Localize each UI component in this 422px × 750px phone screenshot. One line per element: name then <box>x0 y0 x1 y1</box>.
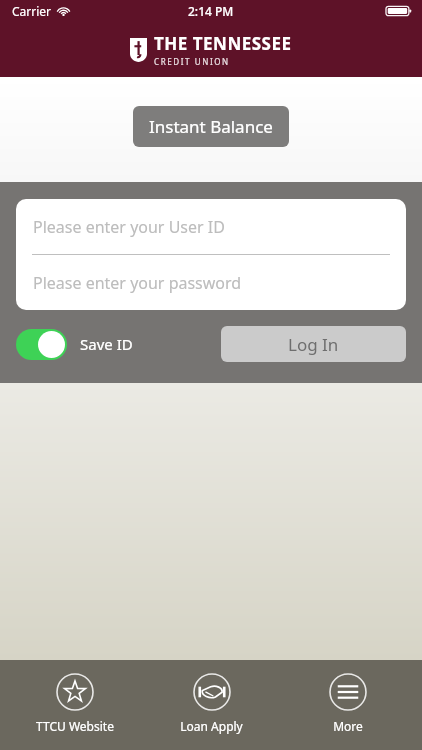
staticText: Please enter your User ID <box>33 216 225 238</box>
staticText: Please enter your password <box>33 272 242 294</box>
button[interactable]: Please enter your User ID <box>16 199 406 254</box>
staticText: More <box>333 718 363 734</box>
staticText: TTCU Website <box>36 718 114 734</box>
staticText: Log In <box>288 333 339 356</box>
button[interactable]: Loan Apply <box>149 660 274 734</box>
staticText: Instant Balance <box>149 115 273 138</box>
staticText: Carrier <box>12 3 52 19</box>
button[interactable]: More <box>285 660 410 734</box>
staticText: THE TENNESSEE <box>154 32 292 55</box>
button[interactable]: Instant Balance <box>133 106 289 147</box>
staticText: 2:14 PM <box>188 3 234 19</box>
staticText: Loan Apply <box>180 718 243 734</box>
button[interactable]: Log In <box>221 326 406 362</box>
button[interactable]: Save ID toggle <box>16 329 67 360</box>
button[interactable]: TTCU Website <box>12 660 137 734</box>
button[interactable]: Please enter your password <box>16 255 406 310</box>
staticText: CREDIT UNION <box>154 56 230 67</box>
staticText: Save ID <box>80 334 133 354</box>
